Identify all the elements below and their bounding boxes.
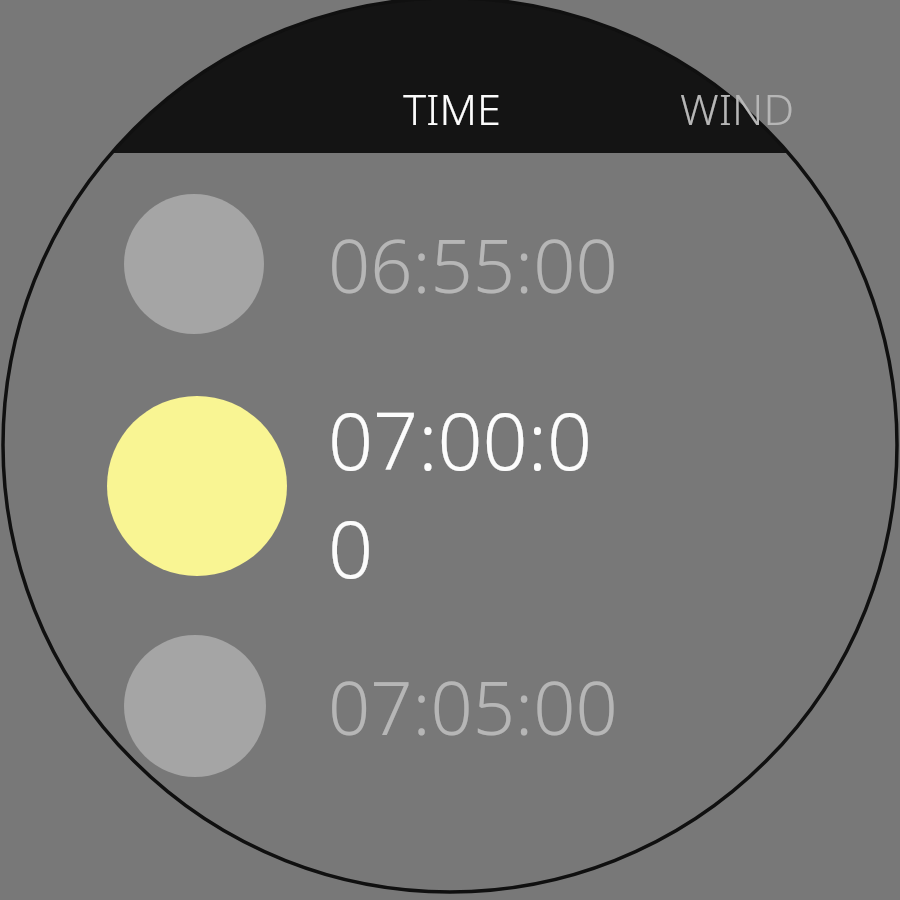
staticText: WIND (680, 79, 794, 135)
staticText: 06:55:00 (328, 214, 618, 315)
button[interactable]: Select 07:00:00 (0, 386, 780, 586)
staticText: 07:05:00 (328, 656, 618, 757)
other: Select 06:55:00 (124, 194, 264, 334)
button[interactable]: Select 06:55:00 (0, 164, 780, 364)
other: Select 07:00:00 (107, 396, 287, 576)
staticText: 07:00:00 (328, 386, 628, 586)
button[interactable]: WIND (680, 79, 830, 135)
other: Select 07:05:00 (124, 635, 266, 777)
button[interactable]: TIME (372, 79, 532, 135)
button[interactable]: Select 07:05:00 (0, 606, 780, 806)
staticText: TIME (403, 79, 501, 135)
